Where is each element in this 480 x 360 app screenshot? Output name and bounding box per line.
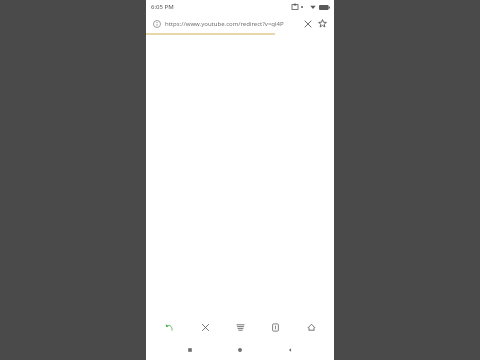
staticText: 6:05 PM [151, 3, 174, 11]
button[interactable]: Menu [228, 315, 252, 339]
button[interactable]: Home [231, 341, 249, 359]
button[interactable]: Site information [150, 17, 163, 30]
staticText: https://www.youtube.com/redirect?v=ql4P [165, 20, 284, 28]
button[interactable]: Stop loading [300, 16, 315, 31]
button[interactable]: Home [299, 315, 323, 339]
button[interactable]: Tabs [263, 315, 287, 339]
button[interactable]: Bookmark [315, 16, 330, 31]
button[interactable]: https://www.youtube.com/redirect?v=ql4P [165, 20, 298, 28]
button[interactable]: Back [157, 315, 181, 339]
button[interactable]: Recents [181, 341, 199, 359]
button[interactable]: Close [193, 315, 217, 339]
button[interactable]: Back [281, 341, 299, 359]
